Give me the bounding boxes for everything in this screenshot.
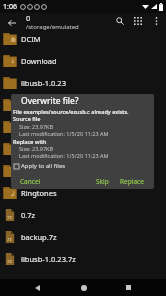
button[interactable]: More options: [147, 12, 165, 30]
button[interactable]: Home: [75, 279, 92, 296]
button[interactable]: Apply to all files: [11, 162, 66, 170]
button[interactable]: Search: [111, 12, 129, 30]
staticText: Pictures: [21, 166, 50, 176]
button[interactable]: Back: [2, 13, 21, 32]
staticText: Replace: [120, 177, 144, 186]
staticText: Notifications: [21, 144, 66, 154]
staticText: Overwrite file?: [21, 95, 79, 107]
staticText: 0: [26, 13, 31, 23]
staticText: DCIM: [21, 34, 41, 44]
staticText: Replace with: [13, 138, 47, 145]
staticText: File examples/source/ezusb.c already exi…: [13, 108, 129, 115]
staticText: Music: [21, 122, 42, 132]
button[interactable]: Grid view: [129, 12, 147, 30]
staticText: libusb-1.0.23.7z: [21, 254, 76, 264]
staticText: Cancel: [20, 177, 41, 186]
staticText: Last modification: 1/5/20 11:23 AM: [19, 152, 109, 159]
staticText: 1:06: [3, 2, 17, 12]
staticText: Size: 23.97KB: [19, 123, 54, 130]
button[interactable]: Notifications: [0, 138, 166, 160]
staticText: libusb-1.0.23: [21, 78, 66, 88]
button[interactable]: Pictures: [0, 160, 166, 182]
button[interactable]: DCIM: [0, 28, 166, 50]
button[interactable]: 7Z: [0, 204, 166, 226]
staticText: 0.7z: [21, 210, 36, 220]
button[interactable]: Cancel: [20, 177, 41, 186]
button[interactable]: 7Z: [0, 248, 166, 270]
staticText: Last modification: 1/5/20 11:23 AM: [19, 130, 109, 137]
button[interactable]: Ringtones: [0, 182, 166, 204]
staticText: 7Z: [7, 215, 12, 221]
button[interactable]: Back: [29, 279, 46, 296]
staticText: 7Z: [7, 237, 12, 243]
button[interactable]: Replace: [120, 177, 144, 186]
staticText: Download: [21, 56, 57, 66]
button[interactable]: 7Z: [0, 226, 166, 248]
staticText: backup.7z: [21, 232, 57, 242]
staticText: Apply to all files: [21, 162, 66, 170]
button[interactable]: Skip: [96, 177, 109, 186]
button[interactable]: Music: [0, 116, 166, 138]
staticText: Size: 23.97KB: [19, 145, 54, 152]
staticText: Ringtones: [21, 188, 57, 198]
button[interactable]: Movies: [0, 94, 166, 116]
staticText: 7Z: [7, 259, 12, 265]
staticText: /storage/emulated: [26, 23, 79, 31]
staticText: Movies: [21, 100, 46, 110]
button[interactable]: Recents: [120, 279, 137, 296]
staticText: Source file: [13, 115, 41, 122]
button[interactable]: libusb-1.0.23: [0, 72, 166, 94]
button[interactable]: Download: [0, 50, 166, 72]
staticText: Skip: [96, 177, 109, 186]
